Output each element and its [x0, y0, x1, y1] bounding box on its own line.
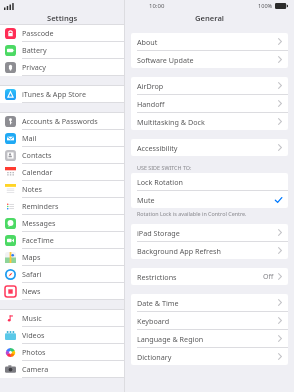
staticText: Lock Rotation [137, 177, 183, 187]
staticText: Reminders [22, 201, 59, 211]
staticText: Software Update [137, 55, 194, 65]
button[interactable]: Multitasking & Dock [131, 113, 288, 130]
button[interactable]: Passcode [0, 25, 124, 42]
button[interactable]: Restrictions [131, 268, 288, 285]
staticText: Restrictions [137, 272, 177, 282]
button[interactable]: Date & Time [131, 294, 288, 311]
staticText: Language & Region [137, 334, 204, 344]
button[interactable]: Mute [131, 191, 288, 208]
staticText: Settings [47, 13, 78, 23]
button[interactable]: About [131, 33, 288, 50]
staticText: USE SIDE SWITCH TO: [137, 164, 192, 171]
button[interactable]: News [0, 283, 124, 300]
button[interactable]: Contacts [0, 147, 124, 164]
staticText: Off [263, 272, 274, 282]
button[interactable]: Videos [0, 327, 124, 344]
staticText: Handoff [137, 99, 165, 109]
staticText: Date & Time [137, 298, 179, 308]
staticText: General [195, 13, 224, 23]
button[interactable]: Keyboard [131, 312, 288, 329]
button[interactable]: Messages [0, 215, 124, 232]
staticText: Multitasking & Dock [137, 117, 205, 127]
button[interactable]: Lock Rotation [131, 173, 288, 190]
staticText: Messages [22, 218, 56, 228]
staticText: FaceTime [22, 235, 54, 245]
button[interactable]: AirDrop [131, 77, 288, 94]
staticText: Music [22, 313, 42, 323]
staticText: Maps [22, 252, 41, 262]
button[interactable]: Notes [0, 181, 124, 198]
staticText: 10:00 [149, 2, 165, 10]
staticText: AirDrop [137, 81, 164, 91]
staticText: Camera [22, 364, 49, 374]
button[interactable]: Music [0, 310, 124, 327]
staticText: iPad Storage [137, 228, 180, 238]
staticText: Videos [22, 330, 45, 340]
staticText: News [22, 286, 41, 296]
button[interactable]: FaceTime [0, 232, 124, 249]
button[interactable]: Camera [0, 361, 124, 378]
button[interactable]: Handoff [131, 95, 288, 112]
staticText: Accessibility [137, 143, 178, 153]
button[interactable]: Calendar [0, 164, 124, 181]
staticText: Rotation Lock is available in Control Ce… [137, 210, 247, 217]
button[interactable]: Software Update [131, 51, 288, 68]
button[interactable]: Maps [0, 249, 124, 266]
staticText: Contacts [22, 150, 52, 160]
button[interactable]: Safari [0, 266, 124, 283]
staticText: About [137, 37, 158, 47]
button[interactable]: Mail [0, 130, 124, 147]
button[interactable]: Privacy [0, 59, 124, 76]
staticText: iTunes & App Store [22, 89, 86, 99]
staticText: Battery [22, 45, 47, 55]
staticText: Photos [22, 347, 46, 357]
staticText: Calendar [22, 167, 53, 177]
staticText: Background App Refresh [137, 246, 221, 256]
button[interactable]: Battery [0, 42, 124, 59]
staticText: Mail [22, 133, 37, 143]
button[interactable]: Accessibility [131, 139, 288, 156]
button[interactable]: iPad Storage [131, 224, 288, 241]
button[interactable]: Dictionary [131, 348, 288, 365]
staticText: Keyboard [137, 316, 170, 326]
button[interactable]: Accounts & Passwords [0, 113, 124, 130]
staticText: Notes [22, 184, 42, 194]
staticText: Mute [137, 195, 155, 205]
staticText: Safari [22, 269, 42, 279]
button[interactable]: Background App Refresh [131, 242, 288, 259]
staticText: Passcode [22, 28, 54, 38]
button[interactable]: Photos [0, 344, 124, 361]
button[interactable]: iTunes & App Store [0, 86, 124, 103]
staticText: Privacy [22, 62, 46, 72]
button[interactable]: Reminders [0, 198, 124, 215]
staticText: Dictionary [137, 352, 172, 362]
staticText: Accounts & Passwords [22, 116, 98, 126]
button[interactable]: Language & Region [131, 330, 288, 347]
staticText: 100% [258, 2, 273, 10]
